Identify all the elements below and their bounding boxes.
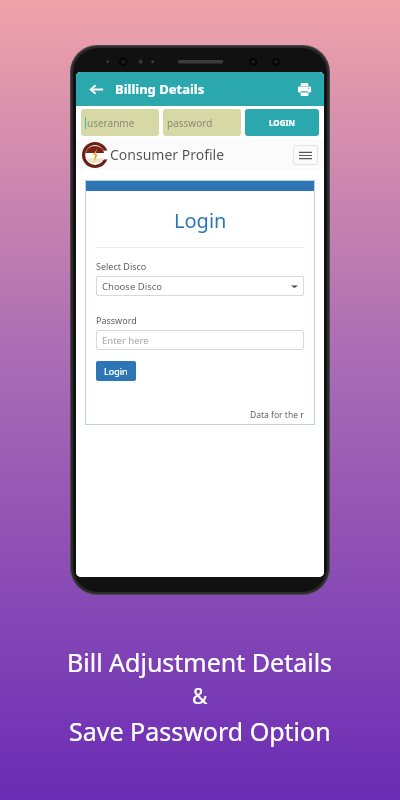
button[interactable]: Choose Disco <box>96 276 304 296</box>
button[interactable]: LOGIN <box>245 109 319 136</box>
staticText: password <box>167 116 213 130</box>
staticText: Choose Disco <box>102 280 162 293</box>
staticText: Password <box>96 314 137 326</box>
button[interactable]: password <box>163 109 241 136</box>
staticText: Bill Adjustment Details <box>67 645 333 679</box>
staticText: Login <box>174 207 227 234</box>
staticText: Billing Details <box>115 80 205 98</box>
button[interactable]: useranme <box>81 109 159 136</box>
button[interactable]: Menu <box>293 145 318 165</box>
button[interactable]: Print <box>293 78 315 100</box>
staticText: Save Password Option <box>69 714 331 748</box>
staticText: LOGIN <box>269 117 296 128</box>
staticText: Data for the r <box>250 409 304 421</box>
staticText: Select Disco <box>96 260 147 272</box>
staticText: Consumer Profile <box>110 145 225 164</box>
button[interactable]: Back <box>85 78 107 100</box>
button[interactable]: Enter here <box>96 330 304 350</box>
button[interactable]: Login <box>96 361 136 381</box>
staticText: useranme <box>87 116 135 130</box>
staticText: & <box>192 682 208 711</box>
staticText: Login <box>104 365 128 377</box>
staticText: Enter here <box>102 334 149 347</box>
